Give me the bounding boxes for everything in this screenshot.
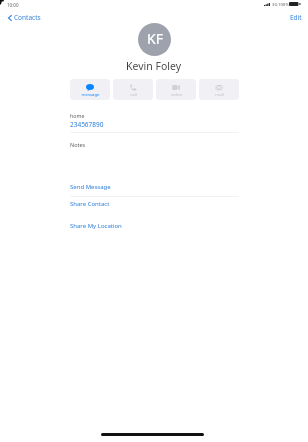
staticText: call: [130, 91, 137, 97]
button[interactable]: Mail: [199, 79, 239, 100]
button[interactable]: Call: [113, 79, 153, 100]
staticText: mail: [215, 91, 224, 97]
staticText: Share Contact: [70, 200, 110, 208]
button[interactable]: Share My Location: [70, 220, 239, 231]
staticText: 10:00: [7, 2, 19, 8]
staticText: Contacts: [14, 13, 41, 22]
staticText: Share My Location: [70, 222, 122, 230]
staticText: Edit: [290, 13, 302, 22]
staticText: message: [81, 91, 100, 97]
button[interactable]: Video call: [156, 79, 196, 100]
button[interactable]: Edit: [289, 12, 303, 23]
staticText: Kevin Foley: [126, 59, 182, 73]
staticText: 100%: [278, 2, 289, 8]
button[interactable]: home: [70, 109, 239, 129]
staticText: Notes: [70, 141, 86, 148]
staticText: KF: [147, 29, 163, 48]
staticText: Send Message: [70, 183, 111, 191]
staticText: 234567890: [70, 120, 104, 129]
button[interactable]: Share Contact: [70, 198, 239, 209]
staticText: home: [70, 112, 85, 119]
staticText: 3G: [272, 2, 278, 8]
staticText: video: [171, 91, 182, 97]
button[interactable]: Notes: [70, 138, 239, 172]
button[interactable]: Contacts: [7, 12, 42, 23]
button[interactable]: Message: [70, 79, 110, 100]
button[interactable]: Send Message: [70, 181, 239, 192]
